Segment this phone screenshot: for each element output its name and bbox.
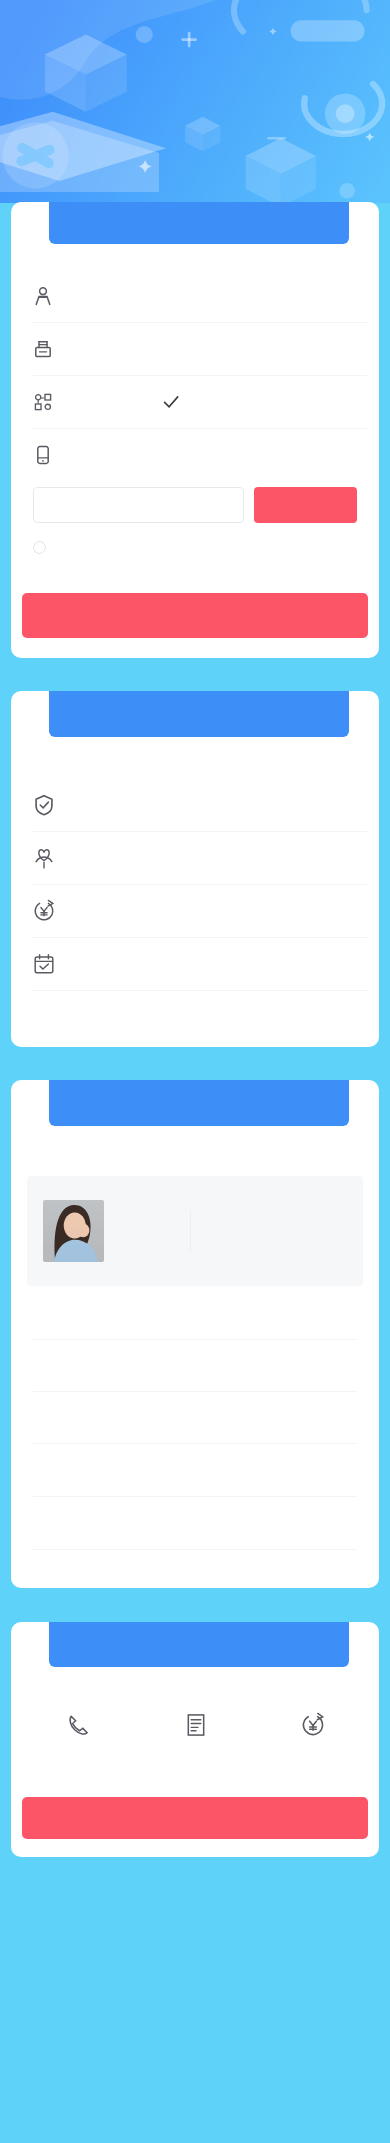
button[interactable]: Send code bbox=[254, 487, 357, 523]
button[interactable]: person bbox=[11, 270, 379, 322]
button[interactable] bbox=[33, 487, 244, 523]
other: phone_rect bbox=[33, 445, 53, 465]
button[interactable]: Records bbox=[137, 1701, 254, 1749]
button[interactable]: Pay bbox=[22, 1797, 368, 1839]
button[interactable]: shield bbox=[11, 779, 379, 831]
button[interactable] bbox=[27, 1176, 363, 1286]
other: relation bbox=[33, 392, 53, 412]
other: id bbox=[33, 339, 53, 359]
button[interactable]: relation bbox=[11, 376, 379, 428]
button[interactable]: Refund bbox=[254, 1701, 371, 1749]
button[interactable]: Call bbox=[19, 1701, 137, 1749]
button[interactable]: refund bbox=[11, 885, 379, 937]
button[interactable]: heartcare bbox=[11, 832, 379, 884]
button[interactable]: Submit bbox=[22, 593, 368, 638]
other: refund bbox=[33, 900, 55, 922]
other: person bbox=[33, 286, 53, 306]
other: shield bbox=[33, 794, 55, 816]
button[interactable]: id bbox=[11, 323, 379, 375]
other: calendar bbox=[33, 953, 55, 975]
other: Agree bbox=[33, 541, 46, 554]
button[interactable]: calendar bbox=[11, 938, 379, 990]
other: heartcare bbox=[33, 847, 55, 869]
button[interactable]: phone_rect bbox=[11, 429, 379, 481]
